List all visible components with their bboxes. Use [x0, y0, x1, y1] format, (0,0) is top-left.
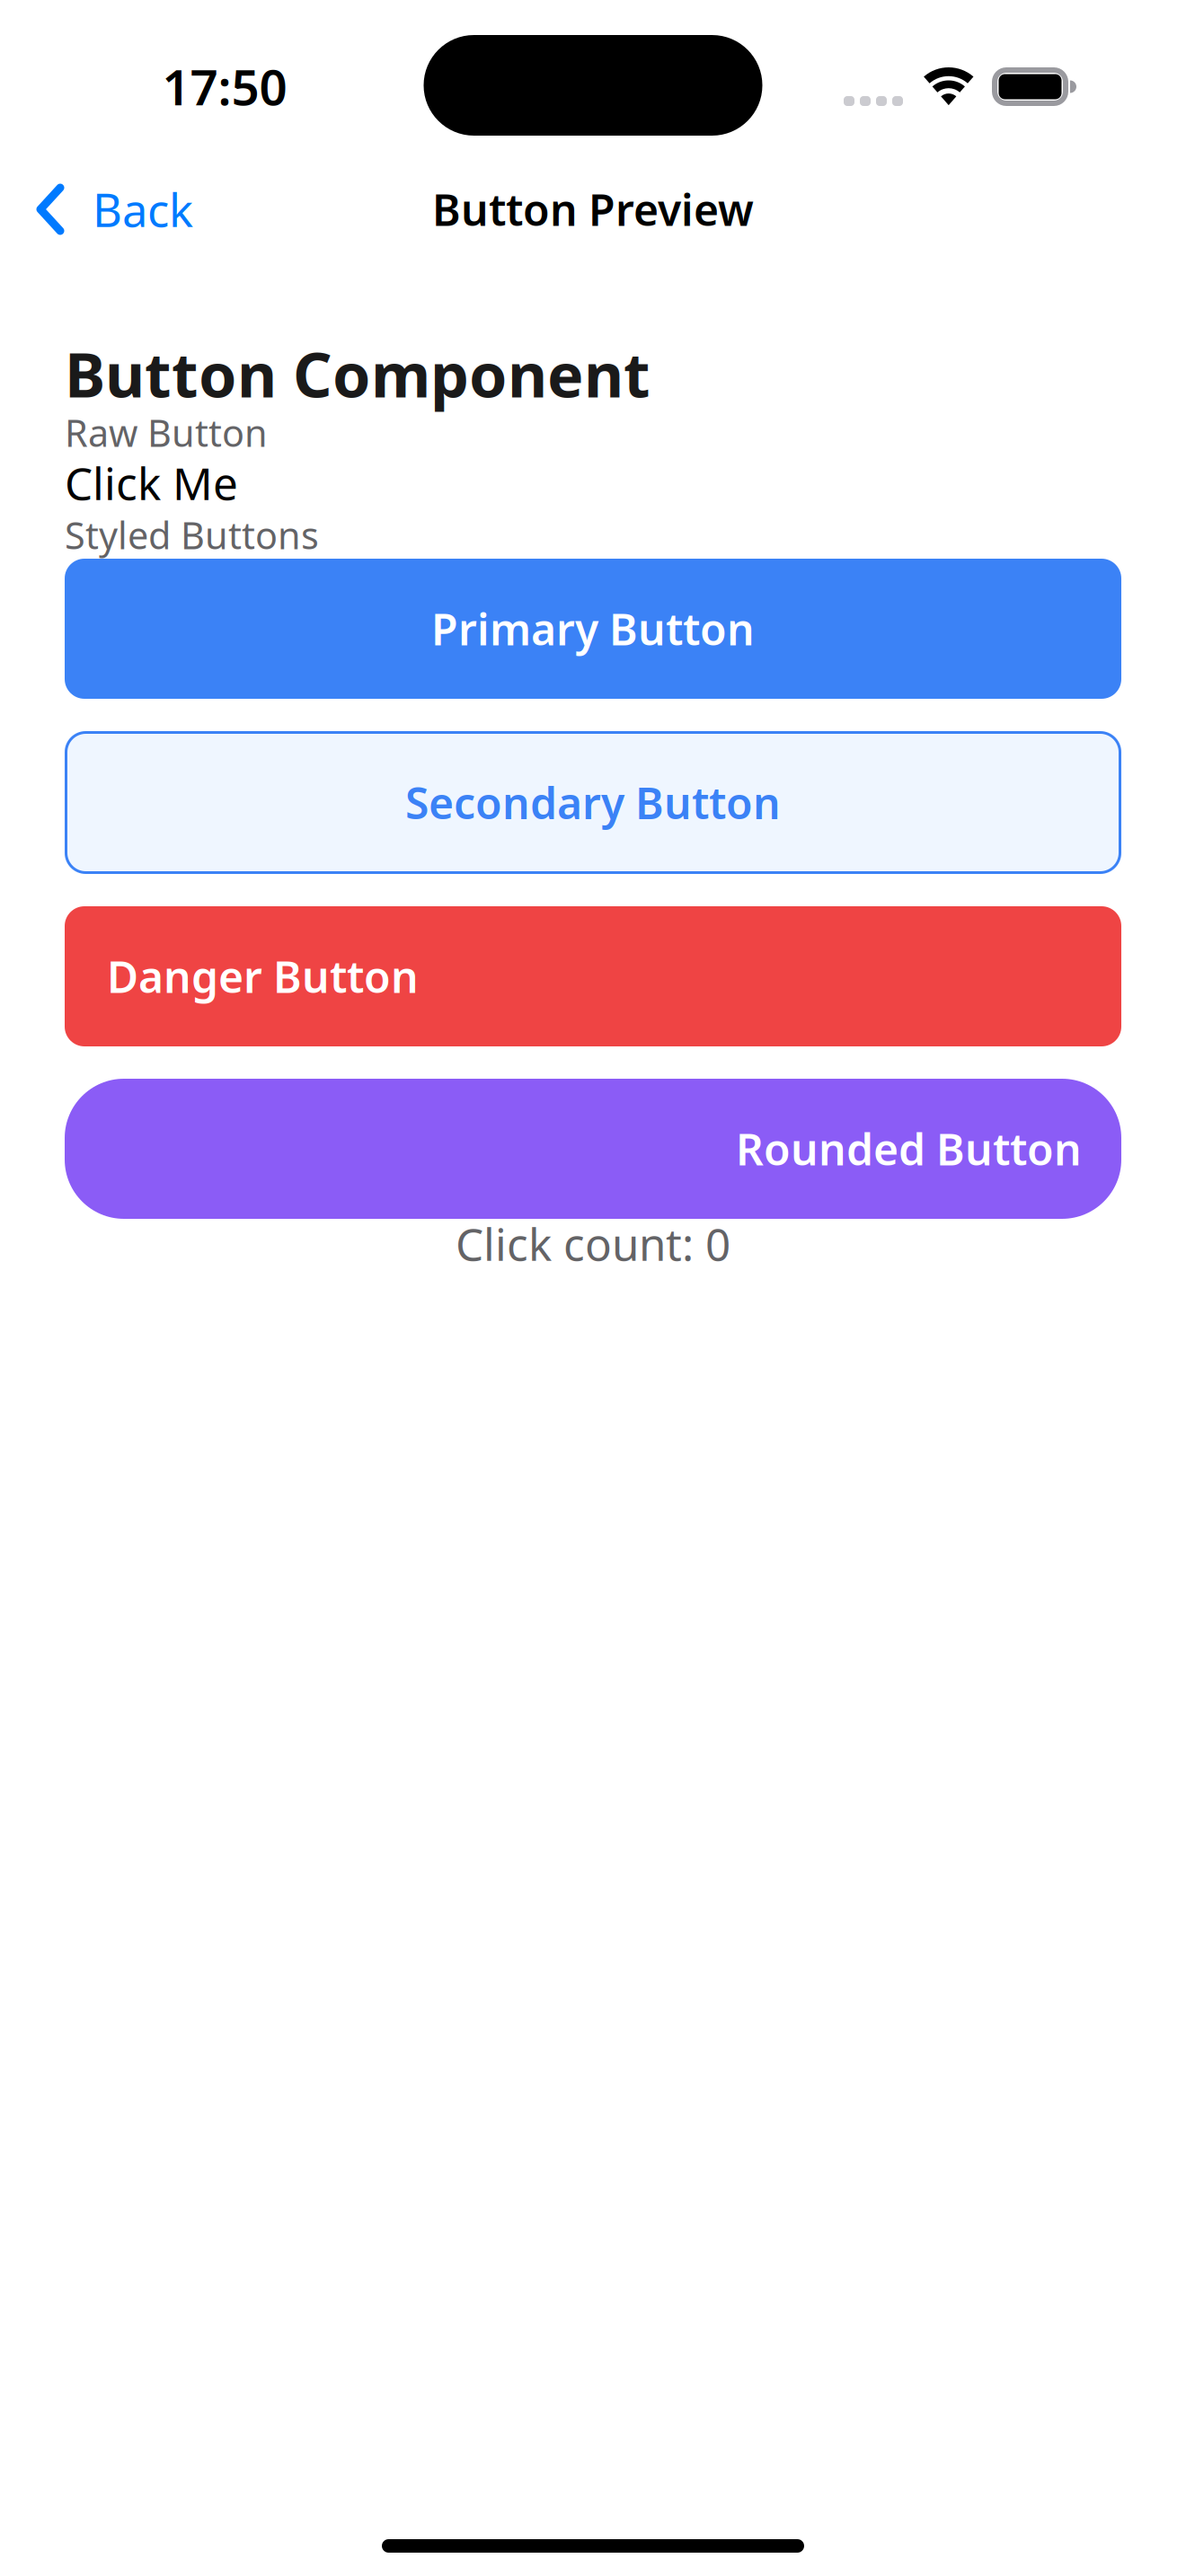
staticText: Secondary Button — [405, 774, 781, 831]
button[interactable]: Click Me — [65, 454, 238, 511]
button[interactable]: Danger Button — [65, 906, 1121, 1046]
staticText: 17:50 — [162, 54, 287, 119]
staticText: Rounded Button — [736, 1120, 1082, 1177]
staticText: Button Preview — [432, 181, 754, 238]
button[interactable]: Rounded Button — [65, 1079, 1121, 1219]
staticText: Danger Button — [107, 948, 419, 1005]
staticText: Button Component — [65, 333, 651, 414]
staticText: Primary Button — [431, 600, 755, 657]
staticText: Back — [93, 179, 193, 240]
button[interactable]: Back — [0, 166, 217, 252]
staticText: Click Me — [65, 453, 238, 512]
staticText: Raw Button — [65, 408, 268, 457]
button[interactable]: Secondary Button — [65, 731, 1121, 874]
staticText: Styled Buttons — [65, 510, 319, 560]
button[interactable]: Primary Button — [65, 559, 1121, 699]
staticText: Click count: 0 — [456, 1214, 730, 1273]
